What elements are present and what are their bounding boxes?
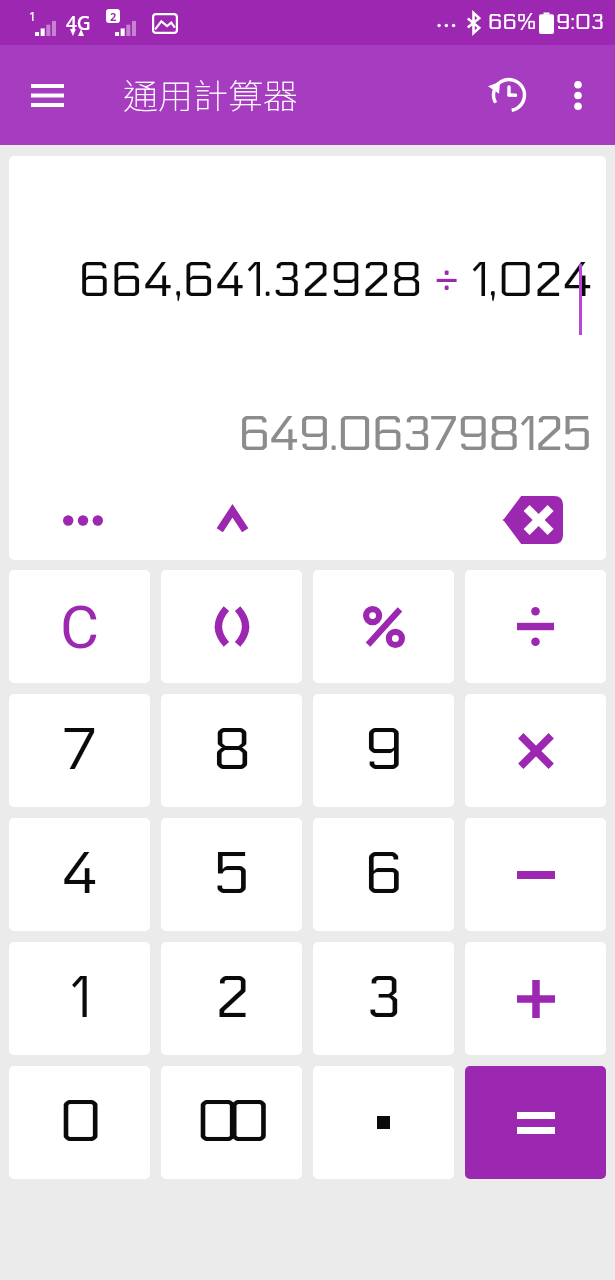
- button[interactable]: 3: [313, 942, 454, 1055]
- staticText: 66%: [488, 10, 537, 35]
- staticText: 7: [63, 716, 97, 785]
- button[interactable]: Percent: [313, 570, 454, 683]
- staticText: 0: [58, 1088, 102, 1157]
- button[interactable]: More functions: [31, 485, 135, 555]
- button[interactable]: 00: [161, 1066, 302, 1179]
- staticText: 8: [212, 716, 251, 785]
- staticText: 6: [364, 840, 403, 909]
- staticText: 649.063798125: [238, 406, 591, 463]
- button[interactable]: Backspace: [482, 485, 582, 555]
- staticText: 3: [366, 964, 401, 1033]
- button[interactable]: 4: [9, 818, 150, 931]
- staticText: 2: [110, 9, 117, 23]
- button[interactable]: Equals: [465, 1066, 606, 1179]
- button[interactable]: 2: [161, 942, 302, 1055]
- button[interactable]: 1: [9, 942, 150, 1055]
- button[interactable]: 0: [9, 1066, 150, 1179]
- staticText: 4: [61, 840, 98, 909]
- button[interactable]: 8: [161, 694, 302, 807]
- staticText: 664,641.32928 ÷ 1,024: [78, 252, 593, 309]
- button[interactable]: Divide: [465, 570, 606, 683]
- staticText: 1: [69, 964, 90, 1033]
- staticText: 00: [195, 1088, 258, 1157]
- button[interactable]: Multiply: [465, 694, 606, 807]
- staticText: 4G: [66, 10, 91, 36]
- staticText: 9: [364, 716, 403, 785]
- staticText: 9:03: [556, 10, 605, 35]
- button[interactable]: Minus: [465, 818, 606, 931]
- button[interactable]: History: [473, 59, 545, 131]
- button[interactable]: Menu: [15, 63, 79, 127]
- button[interactable]: Decimal point: [313, 1066, 454, 1179]
- staticText: 1: [29, 8, 36, 24]
- button[interactable]: Clear: [9, 570, 150, 683]
- staticText: 通用計算器: [123, 68, 299, 119]
- button[interactable]: 6: [313, 818, 454, 931]
- staticText: 5: [213, 840, 250, 909]
- button[interactable]: 9: [313, 694, 454, 807]
- button[interactable]: 5: [161, 818, 302, 931]
- button[interactable]: Power: [180, 485, 284, 555]
- staticText: C: [60, 592, 100, 662]
- staticText: 2: [215, 964, 249, 1033]
- button[interactable]: Plus: [465, 942, 606, 1055]
- button[interactable]: More options: [545, 62, 611, 128]
- button[interactable]: Parentheses: [161, 570, 302, 683]
- button[interactable]: 7: [9, 694, 150, 807]
